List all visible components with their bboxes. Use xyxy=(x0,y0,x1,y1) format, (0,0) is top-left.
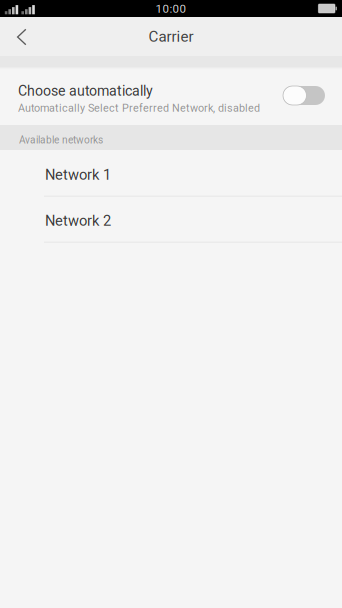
staticText: Choose automatically xyxy=(18,83,153,99)
button[interactable]: Back xyxy=(0,17,40,56)
staticText: Network 2 xyxy=(45,212,111,229)
staticText: Carrier xyxy=(148,28,193,45)
button[interactable]: Network 1 xyxy=(0,150,342,196)
staticText: Automatically Select Preferred Network, … xyxy=(18,102,260,114)
staticText: Available networks xyxy=(19,134,103,146)
staticText: 10:00 xyxy=(155,2,186,15)
staticText: Network 1 xyxy=(45,166,111,183)
button[interactable]: Choose automatically xyxy=(0,56,342,125)
button[interactable]: Network 2 xyxy=(0,196,342,242)
